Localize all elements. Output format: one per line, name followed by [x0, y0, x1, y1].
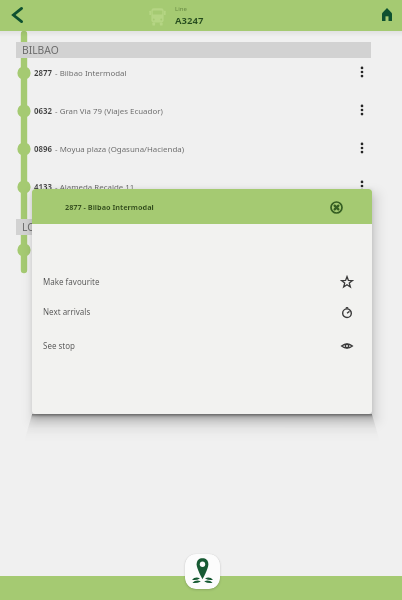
- button[interactable]: Next arrivals: [32, 295, 372, 328]
- staticText: 0896: [34, 144, 53, 155]
- staticText: 4133: [34, 182, 53, 193]
- button[interactable]: Home: [372, 0, 402, 31]
- staticText: See stop: [43, 340, 75, 351]
- button[interactable]: See stop: [32, 329, 372, 362]
- button[interactable]: Make favourite: [32, 265, 372, 298]
- button[interactable]: 1520: [0, 231, 372, 269]
- staticText: LOIU: [22, 220, 47, 234]
- button[interactable]: 4133: [0, 168, 372, 206]
- staticText: - Moyua plaza (Ogasuna/Hacienda): [53, 144, 185, 155]
- button[interactable]: More options: [351, 54, 372, 92]
- button[interactable]: 0632: [0, 92, 372, 130]
- staticText: Next arrivals: [43, 306, 91, 317]
- staticText: A3247: [175, 14, 204, 27]
- staticText: - Bilbao Intermodal: [53, 68, 127, 79]
- staticText: BILBAO: [22, 43, 59, 57]
- button[interactable]: More options: [351, 92, 372, 130]
- button[interactable]: More options: [351, 130, 372, 168]
- staticText: - Alameda Recalde 11: [53, 182, 135, 193]
- button[interactable]: Back: [0, 0, 34, 31]
- staticText: Line: [175, 5, 187, 13]
- button[interactable]: Close: [325, 196, 347, 218]
- button[interactable]: 0896: [0, 130, 372, 168]
- staticText: - Gran Via 79 (Viajes Ecuador): [53, 106, 163, 117]
- staticText: 2877 - Bilbao Intermodal: [65, 202, 154, 212]
- staticText: 2877: [34, 68, 53, 79]
- staticText: 0632: [34, 106, 53, 117]
- button[interactable]: More options: [351, 168, 372, 206]
- button[interactable]: Map: [185, 554, 220, 589]
- button[interactable]: 2877: [0, 54, 372, 92]
- staticText: Make favourite: [43, 276, 100, 287]
